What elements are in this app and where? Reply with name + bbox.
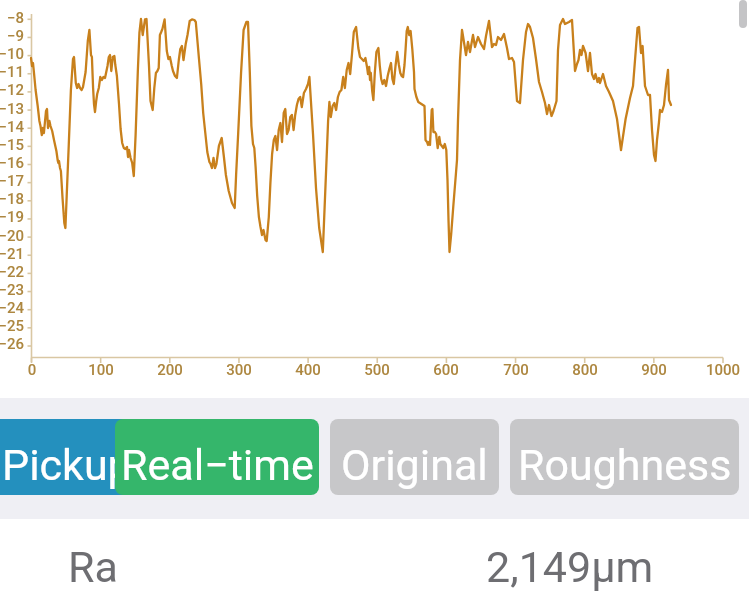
staticText: −10 (0, 45, 24, 63)
staticText: −13 (0, 100, 24, 118)
staticText: −17 (0, 172, 24, 190)
staticText: −23 (0, 281, 24, 299)
staticText: −16 (0, 154, 24, 172)
staticText: 600 (406, 361, 486, 379)
staticText: 900 (614, 361, 694, 379)
staticText: Ra (68, 542, 118, 592)
staticText: −26 (0, 335, 24, 353)
button[interactable]: Ra (0, 519, 749, 607)
button[interactable]: Roughness (510, 419, 739, 495)
staticText: Original (341, 440, 488, 490)
staticText: 100 (61, 361, 141, 379)
staticText: −11 (0, 63, 24, 81)
staticText: 0 (0, 361, 72, 379)
staticText: −8 (0, 9, 24, 27)
staticText: Pickup (2, 440, 126, 490)
staticText: 400 (268, 361, 348, 379)
staticText: 300 (199, 361, 279, 379)
staticText: −12 (0, 81, 24, 99)
staticText: 800 (545, 361, 625, 379)
staticText: Roughness (518, 440, 732, 490)
staticText: 1000 (683, 361, 749, 379)
staticText: 2,149μm (486, 542, 654, 592)
staticText: −18 (0, 190, 24, 208)
staticText: −21 (0, 245, 24, 263)
staticText: 500 (337, 361, 417, 379)
button[interactable]: Pickup (0, 419, 124, 495)
staticText: −14 (0, 118, 24, 136)
button[interactable]: Original (330, 419, 499, 495)
staticText: −25 (0, 317, 24, 335)
staticText: −24 (0, 299, 24, 317)
staticText: 200 (130, 361, 210, 379)
staticText: −19 (0, 208, 24, 226)
button[interactable]: Real−time (115, 419, 319, 495)
staticText: Real−time (121, 440, 314, 490)
staticText: −15 (0, 136, 24, 154)
staticText: −20 (0, 227, 24, 245)
staticText: −22 (0, 263, 24, 281)
staticText: 700 (476, 361, 556, 379)
staticText: −9 (0, 27, 24, 45)
